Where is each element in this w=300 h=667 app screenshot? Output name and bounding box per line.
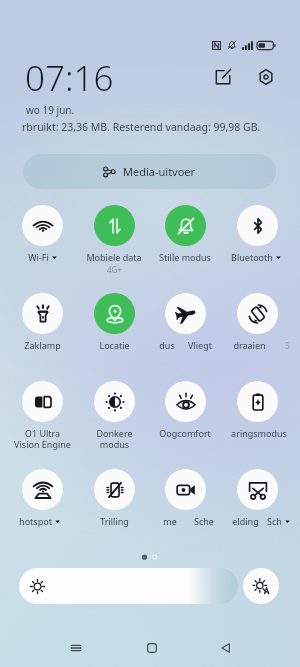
- staticText: dus: [159, 339, 175, 351]
- staticText: Sch: [267, 515, 282, 527]
- button[interactable]: Terug: [206, 628, 246, 667]
- staticText: 07:16: [25, 54, 114, 102]
- button[interactable]: Bewerken: [208, 62, 238, 92]
- staticText: 4G+: [107, 264, 122, 275]
- button[interactable]: [22, 381, 63, 422]
- button[interactable]: [94, 205, 135, 246]
- staticText: Sche: [194, 515, 214, 527]
- staticText: Vliegt: [188, 339, 212, 351]
- button[interactable]: [165, 381, 206, 422]
- staticText: wo 19 jun.: [26, 103, 75, 117]
- staticText: hotspot: [19, 515, 52, 527]
- button[interactable]: [22, 469, 63, 510]
- button[interactable]: [22, 293, 63, 334]
- button[interactable]: [237, 469, 278, 510]
- staticText: Mobiele data: [86, 251, 142, 263]
- button[interactable]: [165, 293, 206, 334]
- staticText: Oogcomfort: [159, 427, 211, 439]
- button[interactable]: Instellingen: [251, 62, 281, 92]
- staticText: O1 Ultra Vision Engine: [14, 427, 71, 450]
- button[interactable]: Recente apps: [56, 628, 96, 667]
- staticText: Trilling: [100, 515, 129, 527]
- staticText: Wi-Fi: [28, 251, 49, 263]
- staticText: Bluetooth: [231, 251, 273, 263]
- staticText: aringsmodus: [231, 427, 287, 439]
- button[interactable]: [237, 381, 278, 422]
- staticText: Donkere modus: [96, 427, 133, 450]
- button[interactable]: [237, 293, 278, 334]
- staticText: Zaklamp: [24, 339, 61, 351]
- button[interactable]: Media-uitvoer: [23, 154, 276, 189]
- button[interactable]: [94, 293, 135, 334]
- button[interactable]: [22, 205, 63, 246]
- staticText: S: [285, 339, 290, 351]
- staticText: Locatie: [99, 339, 130, 351]
- staticText: draaien: [233, 339, 266, 351]
- staticText: elding: [232, 515, 259, 527]
- button[interactable]: Helderheid: [19, 568, 238, 604]
- button[interactable]: [237, 205, 278, 246]
- button[interactable]: [94, 469, 135, 510]
- button[interactable]: [165, 205, 206, 246]
- staticText: rbruikt: 23,36 MB. Resterend vandaag: 99…: [22, 120, 261, 134]
- button[interactable]: [94, 381, 135, 422]
- button[interactable]: Automatische helderheid: [243, 568, 279, 604]
- staticText: me: [163, 515, 177, 527]
- button[interactable]: Home: [132, 628, 172, 667]
- staticText: Stille modus: [159, 251, 211, 263]
- staticText: Media-uitvoer: [123, 164, 196, 179]
- button[interactable]: [165, 469, 206, 510]
